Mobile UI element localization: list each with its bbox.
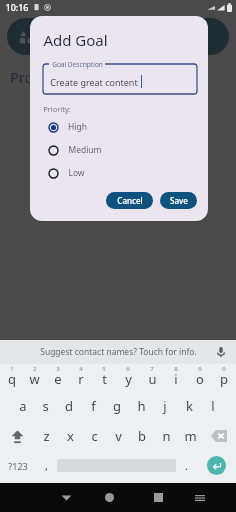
button[interactable]: 2 — [23, 364, 46, 391]
staticText: Save — [170, 195, 188, 206]
button[interactable]: v — [106, 421, 130, 451]
button[interactable]: 8 — [164, 364, 188, 391]
button[interactable]: Back — [47, 483, 85, 512]
staticText: m — [184, 427, 197, 445]
button[interactable]: h — [129, 391, 153, 421]
button[interactable]: 3 — [46, 364, 69, 391]
staticText: u — [148, 370, 157, 388]
staticText: a — [19, 397, 27, 415]
button[interactable]: g — [105, 391, 129, 421]
button[interactable]: Low — [43, 167, 197, 179]
button[interactable]: 6 — [116, 364, 140, 391]
staticText: Medium — [68, 144, 102, 156]
staticText: 3 — [56, 365, 60, 373]
staticText: Add Goal — [43, 30, 108, 50]
staticText: High — [68, 121, 87, 133]
staticText: Suggest contact names? Touch for info. — [40, 346, 197, 358]
button[interactable]: k — [177, 391, 201, 421]
staticText: , — [45, 458, 48, 473]
button[interactable]: Suggest contact names? Touch for info. — [0, 340, 236, 364]
staticText: ?123 — [8, 460, 28, 472]
button[interactable]: Enter — [207, 456, 226, 475]
staticText: Proj — [10, 68, 37, 87]
staticText: 10:16 — [5, 1, 29, 13]
staticText: o — [196, 370, 204, 388]
button[interactable]: Home — [85, 483, 134, 512]
button[interactable]: 7 — [140, 364, 164, 391]
staticText: w — [29, 370, 40, 388]
button[interactable]: 0 — [212, 364, 236, 391]
staticText: e — [54, 370, 62, 388]
button[interactable]: , — [36, 451, 57, 480]
staticText: 8 — [174, 365, 178, 373]
staticText: k — [186, 397, 193, 415]
button[interactable]: Switch keyboard — [183, 483, 217, 512]
staticText: z — [43, 427, 50, 445]
button[interactable]: a — [11, 391, 34, 421]
staticText: 1 — [10, 365, 14, 373]
staticText: d — [65, 397, 73, 415]
staticText: Cancel — [117, 195, 143, 206]
button[interactable]: z — [34, 421, 58, 451]
staticText: n — [162, 427, 171, 445]
button[interactable]: l — [201, 391, 225, 421]
button[interactable]: . — [176, 451, 197, 480]
button[interactable]: Recents — [134, 483, 183, 512]
button[interactable]: 9 — [188, 364, 212, 391]
button[interactable]: b — [130, 421, 154, 451]
staticText: Priority: — [43, 104, 71, 114]
staticText: 5 — [102, 365, 106, 373]
button[interactable]: Shift — [0, 421, 34, 451]
staticText: v — [115, 427, 122, 445]
button[interactable]: 4 — [69, 364, 92, 391]
staticText: 6 — [126, 365, 130, 373]
staticText: x — [67, 427, 74, 445]
staticText: t — [102, 370, 107, 388]
staticText: f — [91, 397, 96, 415]
staticText: . — [185, 458, 188, 473]
staticText: r — [78, 370, 84, 388]
button[interactable]: Delete — [202, 421, 236, 451]
button[interactable]: m — [178, 421, 202, 451]
staticText: 7 — [150, 365, 154, 373]
button[interactable]: j — [153, 391, 177, 421]
button[interactable]: Save — [160, 192, 197, 209]
button[interactable]: Categories — [7, 18, 229, 55]
staticText: b — [138, 427, 146, 445]
button[interactable]: d — [57, 391, 81, 421]
button[interactable]: 1 — [0, 364, 23, 391]
button[interactable]: Cancel — [106, 192, 153, 209]
button[interactable]: Medium — [43, 144, 197, 156]
button[interactable]: s — [34, 391, 57, 421]
staticText: Low — [68, 167, 85, 179]
button[interactable]: f — [81, 391, 105, 421]
staticText: s — [42, 397, 49, 415]
staticText: j — [163, 397, 167, 415]
button[interactable]: Voice input — [215, 346, 227, 358]
staticText: 2 — [33, 365, 37, 373]
staticText: 4 — [79, 365, 83, 373]
button[interactable]: n — [154, 421, 178, 451]
button[interactable]: High — [43, 121, 197, 133]
button[interactable]: c — [82, 421, 106, 451]
staticText: y — [125, 370, 132, 388]
button[interactable]: x — [58, 421, 82, 451]
staticText: q — [8, 370, 16, 388]
button[interactable]: ?123 — [0, 451, 36, 480]
staticText: 0 — [222, 365, 226, 373]
staticText: p — [220, 370, 228, 388]
staticText: 9 — [198, 365, 202, 373]
staticText: h — [137, 397, 146, 415]
staticText: Create great content — [50, 76, 138, 88]
staticText: i — [174, 370, 178, 388]
other: Categories — [18, 28, 36, 46]
staticText: Project Goals — [57, 29, 133, 45]
staticText: l — [211, 397, 215, 415]
button[interactable]: 5 — [92, 364, 116, 391]
staticText: Goal Description — [52, 60, 103, 69]
staticText: g — [113, 397, 121, 415]
staticText: c — [91, 427, 98, 445]
